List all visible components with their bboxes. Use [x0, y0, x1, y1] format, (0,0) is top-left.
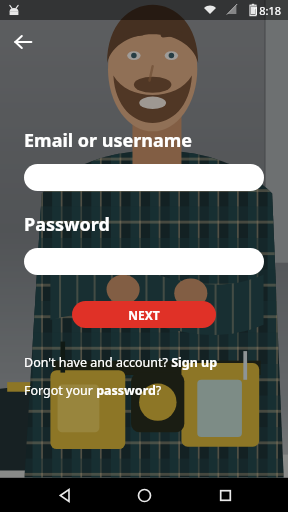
staticText: Password	[24, 212, 110, 237]
button[interactable]: Don't have and account? Sign up	[24, 354, 218, 371]
staticText: Don't have and account? Sign up	[24, 354, 218, 371]
button[interactable]: Email or username field	[24, 164, 264, 191]
staticText: NEXT	[128, 307, 160, 323]
button[interactable]: Back	[47, 478, 81, 512]
button[interactable]: NEXT	[72, 301, 216, 328]
button[interactable]: Recent apps	[208, 478, 242, 512]
button[interactable]: Home	[127, 478, 161, 512]
staticText: Forgot your password?	[24, 382, 162, 399]
staticText: Email or username	[24, 128, 193, 153]
button[interactable]: Forgot your password?	[24, 382, 162, 399]
button[interactable]: Back	[3, 22, 43, 62]
button[interactable]: Password field	[24, 248, 264, 275]
staticText: 18:18	[253, 3, 282, 18]
